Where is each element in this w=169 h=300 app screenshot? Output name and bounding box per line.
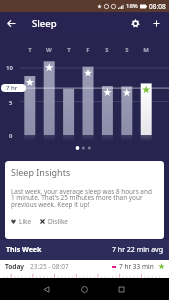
- staticText: Dislike: [48, 217, 69, 226]
- staticText: M: [143, 46, 149, 54]
- button[interactable]: Like: [11, 216, 32, 227]
- button[interactable]: Settings: [124, 12, 146, 34]
- staticText: Sleep: [32, 17, 57, 30]
- button[interactable]: Recents: [106, 278, 136, 300]
- staticText: 08:08: [149, 2, 166, 11]
- button[interactable]: Back: [31, 278, 61, 300]
- staticText: Last week, your average sleep was 8 hour…: [11, 187, 156, 209]
- staticText: F: [86, 46, 90, 54]
- staticText: This Week: [6, 245, 42, 255]
- staticText: S: [125, 46, 129, 54]
- button[interactable]: Home: [69, 278, 99, 300]
- button[interactable]: Today: [0, 260, 169, 278]
- staticText: 7 hr 33 min: [119, 262, 154, 271]
- button[interactable]: Back: [0, 12, 22, 34]
- staticText: 10: [6, 64, 13, 72]
- button[interactable]: Dislike: [40, 216, 69, 227]
- staticText: 23:25 - 08:07: [30, 262, 69, 271]
- staticText: 18%: [126, 2, 138, 10]
- staticText: S: [105, 46, 109, 54]
- staticText: W: [46, 46, 52, 54]
- button[interactable]: Add: [145, 12, 167, 34]
- staticText: Like: [19, 217, 32, 226]
- staticText: T: [28, 46, 32, 54]
- button[interactable]: This Week: [0, 240, 169, 260]
- staticText: 5: [9, 99, 13, 107]
- staticText: 0: [9, 132, 13, 140]
- staticText: Sleep Insights: [11, 166, 71, 178]
- staticText: 7 hr 22 min avg: [112, 245, 163, 255]
- staticText: 7 hr: [6, 84, 18, 92]
- staticText: Today: [5, 262, 25, 271]
- button[interactable]: Sleep Insights: [5, 161, 164, 239]
- staticText: T: [67, 46, 71, 54]
